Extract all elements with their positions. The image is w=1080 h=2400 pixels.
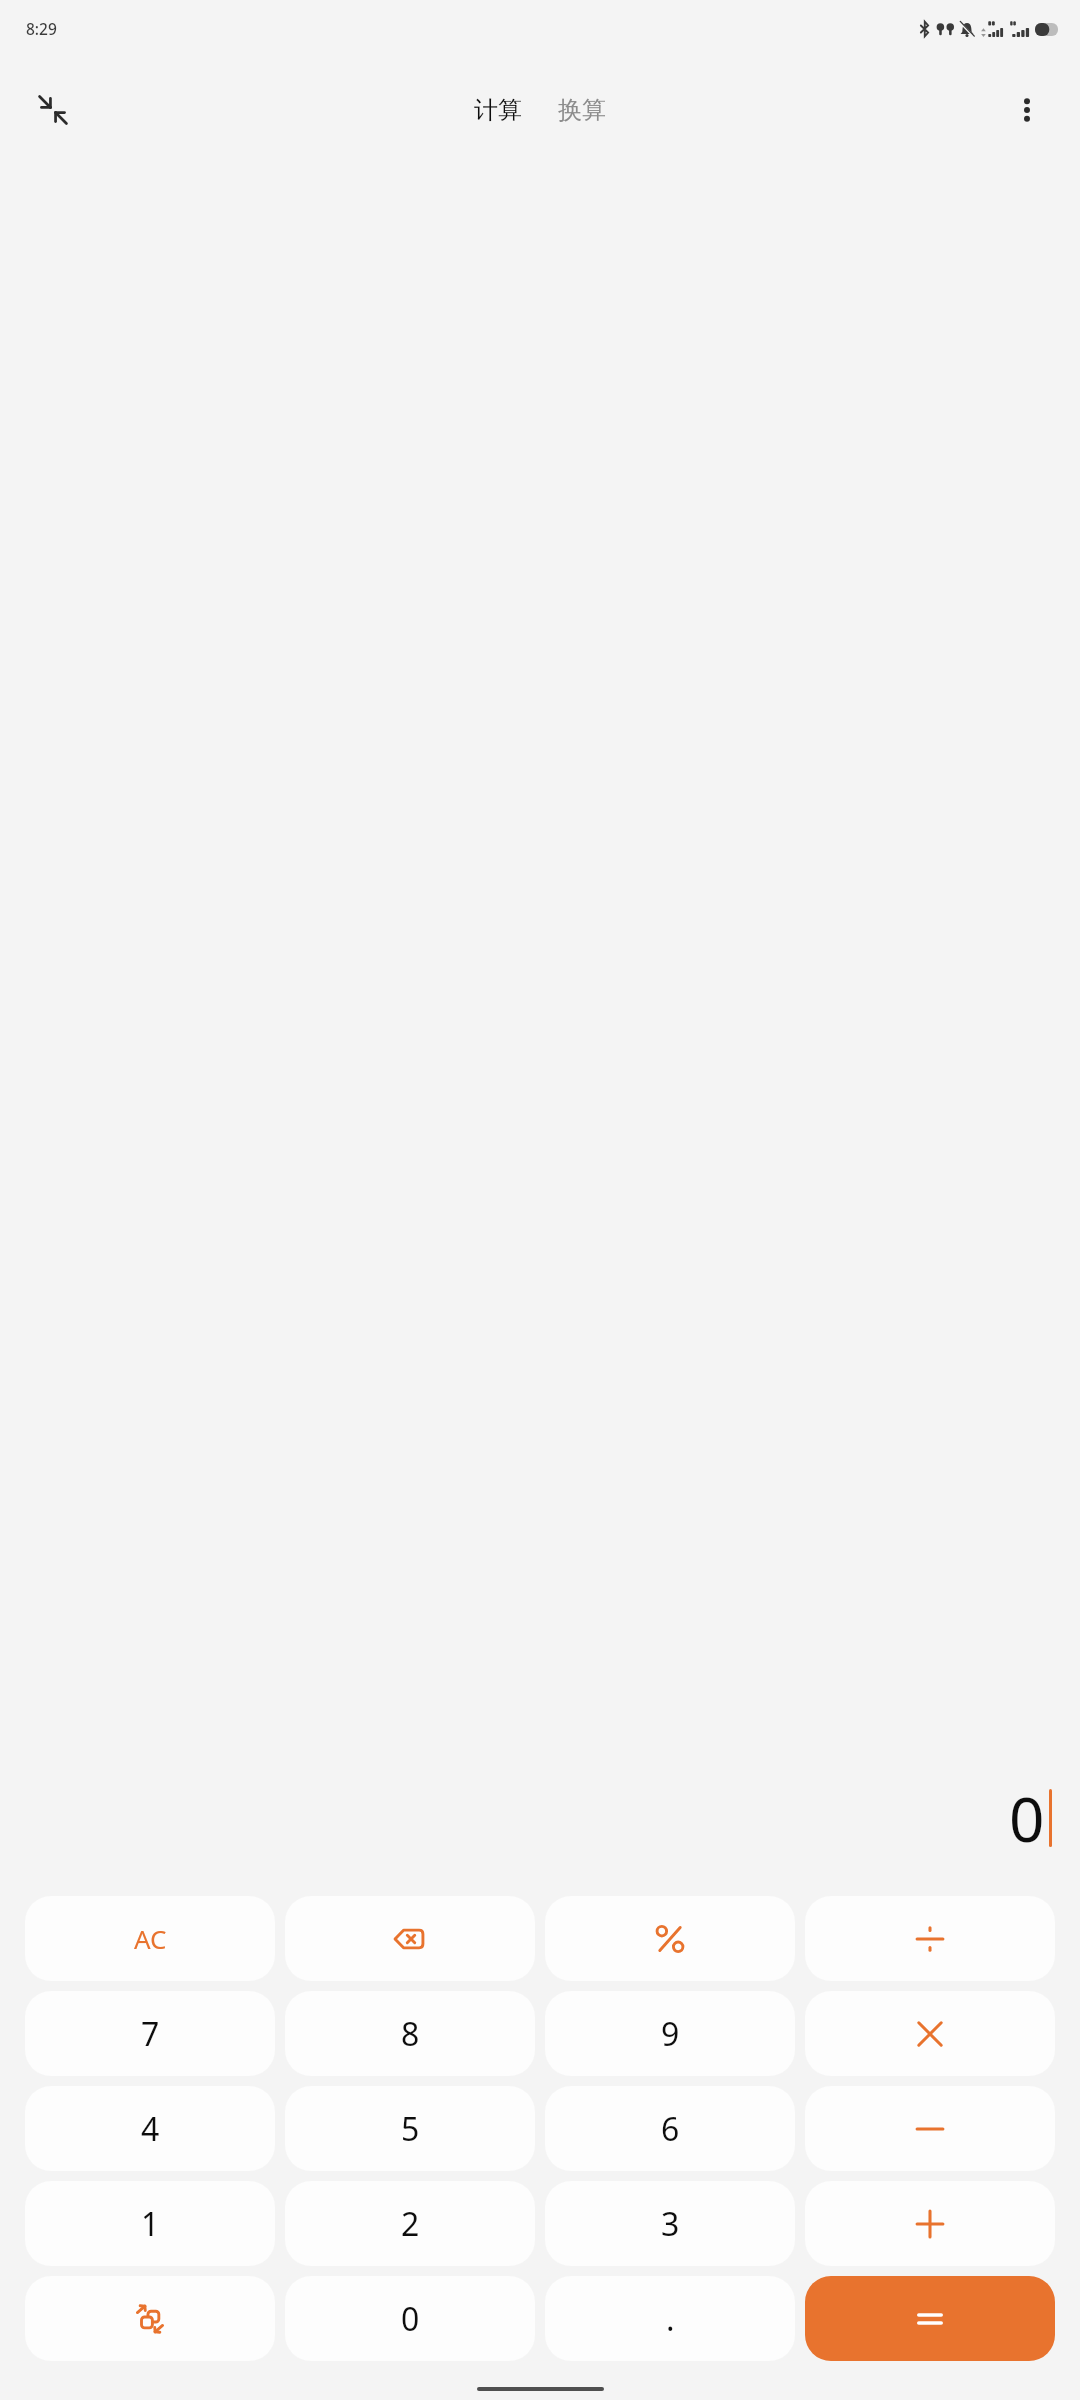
staticText: AC xyxy=(134,1921,167,1956)
staticText: 8 xyxy=(401,2012,420,2056)
staticText: 7 xyxy=(141,2012,160,2056)
button[interactable]: Equals xyxy=(805,2276,1055,2361)
button[interactable]: 换算 xyxy=(548,85,616,135)
button[interactable]: 1 xyxy=(25,2181,275,2266)
staticText: 换算 xyxy=(558,95,606,125)
button[interactable]: 2 xyxy=(285,2181,535,2266)
button[interactable]: Multiply xyxy=(805,1991,1055,2076)
staticText: 3 xyxy=(661,2202,680,2246)
button[interactable]: Collapse xyxy=(26,83,80,137)
staticText: 1 xyxy=(141,2202,160,2246)
button[interactable]: Divide xyxy=(805,1896,1055,1981)
button[interactable]: 计算 xyxy=(464,85,532,135)
staticText: 0 xyxy=(1009,1776,1045,1860)
staticText: 5 xyxy=(401,2107,420,2151)
button[interactable]: Percent xyxy=(545,1896,795,1981)
button[interactable]: 4 xyxy=(25,2086,275,2171)
button[interactable]: 9 xyxy=(545,1991,795,2076)
staticText: 计算 xyxy=(474,95,522,125)
button[interactable]: AC xyxy=(25,1896,275,1981)
staticText: 9 xyxy=(661,2012,680,2056)
staticText: 6 xyxy=(661,2107,680,2151)
staticText: 8:29 xyxy=(26,18,57,39)
button[interactable]: 3 xyxy=(545,2181,795,2266)
button[interactable]: . xyxy=(545,2276,795,2361)
staticText: 2 xyxy=(401,2202,420,2246)
staticText: 0 xyxy=(401,2297,420,2341)
button[interactable]: Minus xyxy=(805,2086,1055,2171)
button[interactable]: 8 xyxy=(285,1991,535,2076)
button[interactable]: Plus xyxy=(805,2181,1055,2266)
button[interactable]: 0 xyxy=(285,2276,535,2361)
button[interactable]: More options xyxy=(1000,83,1054,137)
button[interactable]: 6 xyxy=(545,2086,795,2171)
staticText: 4 xyxy=(141,2107,160,2151)
button[interactable]: Convert xyxy=(25,2276,275,2361)
staticText: . xyxy=(666,2297,675,2341)
button[interactable]: Backspace xyxy=(285,1896,535,1981)
button[interactable]: 5 xyxy=(285,2086,535,2171)
button[interactable]: 7 xyxy=(25,1991,275,2076)
